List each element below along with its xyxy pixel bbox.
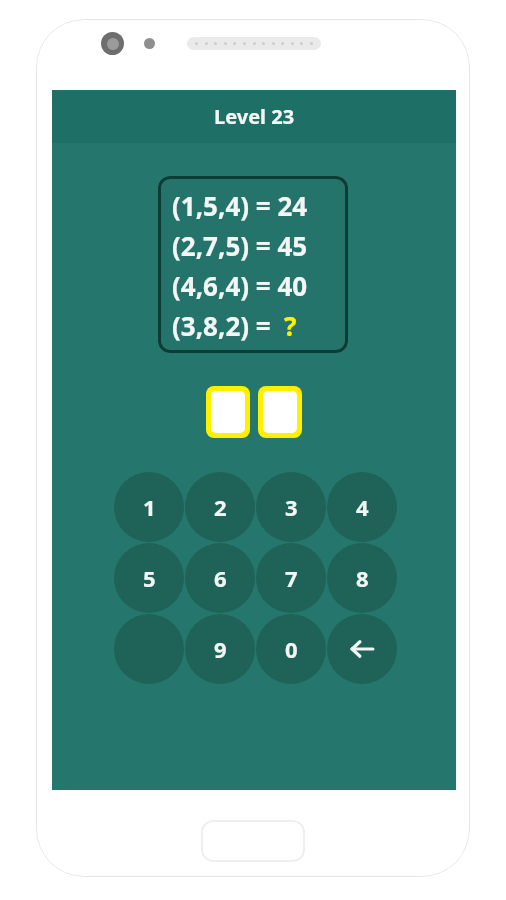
staticText: 9 xyxy=(214,634,227,664)
button[interactable]: 8 xyxy=(327,543,397,613)
staticText: 0 xyxy=(285,634,298,664)
staticText: (3,8,2) = xyxy=(172,308,278,343)
button[interactable]: Answer digit xyxy=(263,391,297,433)
button[interactable]: Answer digit xyxy=(211,391,245,433)
staticText: 2 xyxy=(214,492,227,522)
staticText: 8 xyxy=(356,563,369,593)
button[interactable]: 4 xyxy=(327,472,397,542)
button[interactable]: 2 xyxy=(185,472,255,542)
button[interactable]: Blank xyxy=(114,614,184,684)
button[interactable]: Home xyxy=(201,820,305,862)
staticText: 6 xyxy=(214,563,227,593)
staticText: 3 xyxy=(285,492,298,522)
staticText: 1 xyxy=(143,492,156,522)
staticText: Level 23 xyxy=(214,103,295,130)
button[interactable]: 5 xyxy=(114,543,184,613)
button[interactable]: 9 xyxy=(185,614,255,684)
staticText: 7 xyxy=(285,563,298,593)
button[interactable]: Backspace xyxy=(327,614,397,684)
staticText: ? xyxy=(284,308,297,343)
staticText: (2,7,5) = 45 xyxy=(172,228,308,263)
button[interactable]: 1 xyxy=(114,472,184,542)
staticText: (4,6,4) = 40 xyxy=(172,268,308,303)
staticText: 5 xyxy=(143,563,156,593)
button[interactable]: 3 xyxy=(256,472,326,542)
staticText: (1,5,4) = 24 xyxy=(172,188,308,223)
button[interactable]: 0 xyxy=(256,614,326,684)
button[interactable]: 7 xyxy=(256,543,326,613)
staticText: 4 xyxy=(356,492,369,522)
button[interactable]: 6 xyxy=(185,543,255,613)
